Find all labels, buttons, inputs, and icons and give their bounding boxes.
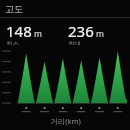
staticText: 236 xyxy=(68,21,94,41)
button[interactable]: 236 xyxy=(62,21,124,46)
button[interactable]: 148 xyxy=(0,21,62,46)
staticText: 148 xyxy=(6,21,32,41)
staticText: 고도 xyxy=(5,3,23,14)
staticText: 최소 xyxy=(6,40,19,45)
button[interactable]: 고도 xyxy=(0,0,130,17)
staticText: m xyxy=(96,28,104,40)
button[interactable]: Elevation chart xyxy=(0,46,130,116)
staticText: 최대 xyxy=(68,40,81,45)
staticText: 거리(km) xyxy=(50,116,81,126)
staticText: m xyxy=(34,28,42,40)
